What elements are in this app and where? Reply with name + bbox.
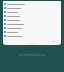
button[interactable] [3,22,61,26]
button[interactable] [3,30,61,34]
button[interactable] [3,10,61,14]
button[interactable] [3,6,61,10]
button[interactable]: Confirm [52,39,56,42]
button[interactable] [3,14,61,18]
button[interactable] [3,34,61,38]
button[interactable] [3,26,61,30]
staticText: Get started with a tap [0,53,64,57]
staticText: OK [52,39,56,42]
button[interactable] [3,18,61,22]
button[interactable] [3,2,61,6]
staticText: more [29,42,35,45]
